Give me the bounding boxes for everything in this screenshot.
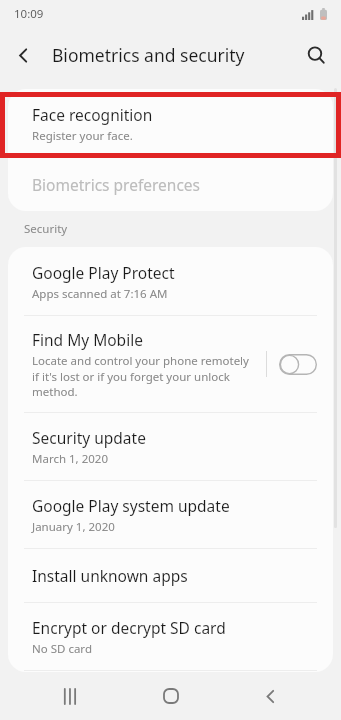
staticText: Locate and control your phone remotely i… [32, 353, 258, 399]
button[interactable]: Back [242, 672, 298, 720]
staticText: January 1, 2020 [32, 519, 115, 535]
staticText: Security update [32, 427, 146, 448]
staticText: Biometrics and security [52, 43, 245, 67]
staticText: Install unknown apps [32, 565, 188, 586]
staticText: Apps scanned at 7:16 AM [32, 286, 168, 302]
button[interactable]: Google Play system update [8, 481, 333, 548]
button[interactable]: Back [0, 32, 46, 78]
button[interactable]: Find My Mobile [8, 316, 333, 412]
staticText: No SD card [32, 641, 92, 657]
button[interactable]: Home [143, 672, 199, 720]
staticText: Find My Mobile [32, 329, 143, 350]
button[interactable]: Recents [43, 672, 99, 720]
staticText: March 1, 2020 [32, 451, 108, 467]
button[interactable]: Biometrics preferences [8, 160, 333, 211]
button[interactable]: Encrypt or decrypt SD card [8, 603, 333, 670]
staticText: Google Play system update [32, 495, 230, 516]
button[interactable]: Search [291, 30, 341, 80]
button[interactable]: Security update [8, 413, 333, 480]
staticText: Register your face. [32, 128, 133, 144]
button[interactable]: Install unknown apps [8, 549, 333, 602]
staticText: Google Play Protect [32, 262, 175, 283]
staticText: Biometrics preferences [32, 174, 201, 195]
button[interactable]: Google Play Protect [8, 247, 333, 315]
button[interactable]: Face recognition [8, 89, 333, 160]
staticText: Face recognition [32, 104, 153, 125]
button[interactable]: Find My Mobile toggle [279, 354, 317, 375]
staticText: 10:09 [14, 6, 44, 22]
staticText: Security [24, 221, 68, 237]
staticText: Encrypt or decrypt SD card [32, 617, 226, 638]
